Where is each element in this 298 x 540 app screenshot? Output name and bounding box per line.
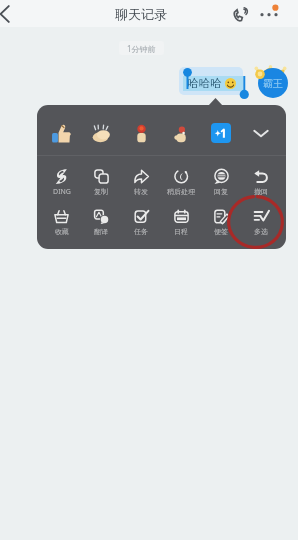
staticText: 哈哈哈 bbox=[187, 76, 222, 90]
button[interactable]: 哈哈哈 bbox=[179, 67, 243, 95]
button[interactable]: 复制 bbox=[81, 164, 121, 204]
button[interactable]: Rose bbox=[161, 111, 201, 155]
staticText: 多选 bbox=[254, 227, 268, 236]
button[interactable]: Avatar bbox=[258, 68, 288, 98]
button[interactable]: 稍后处理 bbox=[161, 164, 201, 204]
button[interactable]: 撤回 bbox=[241, 164, 281, 204]
staticText: DING bbox=[53, 187, 71, 197]
staticText: 聊天记录 bbox=[115, 6, 167, 22]
staticText: 便签 bbox=[214, 227, 228, 236]
button[interactable]: 日程 bbox=[161, 204, 201, 244]
staticText: 收藏 bbox=[55, 227, 69, 236]
button[interactable]: 多选 bbox=[241, 204, 281, 244]
button[interactable]: 收藏 bbox=[42, 204, 81, 244]
button[interactable]: 转发 bbox=[121, 164, 161, 204]
staticText: 任务 bbox=[134, 227, 148, 236]
staticText: 撤回 bbox=[254, 187, 268, 196]
button[interactable]: 翻译 bbox=[81, 204, 121, 244]
button[interactable]: 回复 bbox=[201, 164, 241, 204]
button[interactable]: Thumbs up bbox=[42, 111, 81, 155]
button[interactable]: 便签 bbox=[201, 204, 241, 244]
button[interactable]: Rose bbox=[121, 111, 161, 155]
button[interactable]: Back bbox=[0, 2, 15, 26]
staticText: 日程 bbox=[174, 227, 188, 236]
button[interactable]: Call bbox=[228, 2, 252, 26]
button[interactable]: Expand bbox=[241, 111, 281, 155]
button[interactable]: 任务 bbox=[121, 204, 161, 244]
staticText: 翻译 bbox=[94, 227, 108, 236]
button[interactable]: More options bbox=[258, 2, 282, 26]
button[interactable]: Clap bbox=[81, 111, 121, 155]
staticText: 复制 bbox=[94, 187, 108, 196]
staticText: 转发 bbox=[134, 187, 148, 196]
button[interactable]: DING bbox=[42, 164, 81, 204]
staticText: 1分钟前 bbox=[127, 43, 156, 54]
staticText: 霸王 bbox=[263, 77, 283, 90]
button[interactable]: Add reaction bbox=[201, 111, 241, 155]
staticText: 回复 bbox=[214, 187, 228, 196]
staticText: 稍后处理 bbox=[167, 187, 195, 196]
